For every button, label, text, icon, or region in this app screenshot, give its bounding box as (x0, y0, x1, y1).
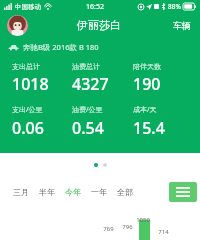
staticText: 奔驰B级 2016款 B 180 (23, 42, 99, 52)
staticText: 1018 (12, 73, 49, 95)
staticText: 15.4 (133, 117, 165, 139)
staticText: 一年 (91, 187, 107, 197)
button[interactable]: 今年 (60, 183, 86, 201)
staticText: 中国移动 (15, 3, 41, 11)
staticText: 油费/公里 (72, 105, 103, 115)
staticText: 今年 (65, 187, 81, 197)
button[interactable]: Profile (7, 15, 28, 36)
staticText: 4327 (72, 73, 109, 95)
staticText: 190 (133, 73, 161, 95)
button[interactable]: 奔驰B级 2016款 B 180 (0, 39, 200, 55)
staticText: 796 (122, 223, 133, 231)
staticText: 0.54 (72, 117, 104, 139)
staticText: 三月 (13, 187, 29, 197)
staticText: 支出总计 (12, 62, 40, 71)
staticText: 半年 (39, 187, 55, 197)
staticText: 油费总计 (72, 62, 100, 71)
staticText: 16:52 (86, 2, 104, 12)
staticText: 769 (103, 225, 114, 233)
staticText: 成本/天 (133, 105, 157, 115)
staticText: 支出/公里 (12, 105, 43, 115)
staticText: 88% (168, 2, 181, 11)
staticText: 0.06 (12, 117, 44, 139)
staticText: 1050 (136, 216, 150, 224)
staticText: 陪伴天数 (133, 62, 161, 71)
button[interactable]: 车辆 (171, 17, 193, 34)
button[interactable]: 全部 (112, 183, 138, 201)
button[interactable]: Menu (169, 182, 197, 202)
staticText: 车辆 (173, 20, 191, 31)
button[interactable]: 三月 (8, 183, 34, 201)
button[interactable]: 半年 (34, 183, 60, 201)
staticText: 714 (158, 228, 169, 236)
staticText: 伊丽莎白 (77, 18, 121, 32)
staticText: 全部 (117, 187, 133, 197)
button[interactable]: 一年 (86, 183, 112, 201)
